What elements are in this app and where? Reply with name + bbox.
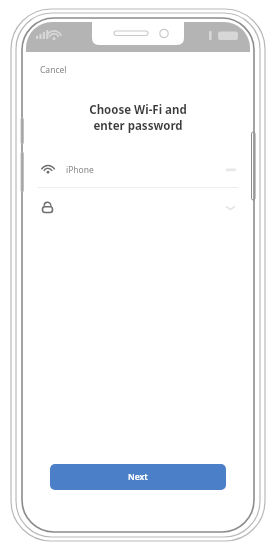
button[interactable]: Password	[26, 188, 250, 226]
button[interactable]: Next	[50, 464, 226, 490]
staticText: Cancel	[40, 64, 67, 76]
staticText: iPhone	[66, 164, 94, 176]
other: Wi-Fi	[40, 162, 56, 178]
button[interactable]: Cancel	[36, 60, 71, 80]
staticText: Next	[128, 471, 148, 483]
staticText: Choose Wi-Fi and enter password	[50, 102, 226, 133]
button[interactable]: Wi-Fi	[26, 153, 250, 187]
other: Password	[40, 200, 55, 215]
other: Show password	[225, 202, 236, 213]
